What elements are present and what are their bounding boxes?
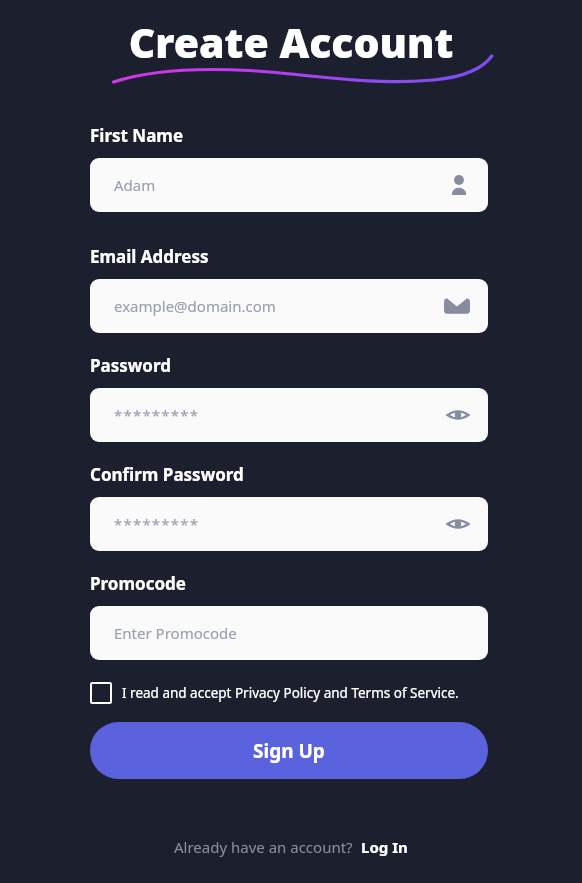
button[interactable]: Show password — [446, 403, 470, 427]
staticText: ********* — [114, 405, 200, 425]
staticText: I read and accept Privacy Policy and Ter… — [122, 684, 459, 702]
button[interactable]: Sign Up — [90, 722, 488, 779]
button[interactable]: Email address — [444, 293, 470, 319]
button[interactable]: Log In — [361, 837, 408, 857]
staticText: ********* — [114, 514, 200, 534]
staticText: Promocode — [90, 572, 186, 595]
staticText: Adam — [114, 175, 156, 195]
staticText: First Name — [90, 124, 184, 147]
staticText: Create Account — [0, 14, 582, 70]
staticText: Sign Up — [253, 738, 325, 764]
button[interactable]: First name — [448, 174, 470, 196]
button[interactable]: Enter Promocode — [90, 606, 488, 660]
staticText: Already have an account? — [174, 837, 353, 857]
staticText: example@domain.com — [114, 296, 276, 316]
staticText: Enter Promocode — [114, 623, 237, 643]
button[interactable]: ********* — [90, 497, 488, 551]
staticText: Log In — [361, 837, 408, 857]
button[interactable]: Adam — [90, 158, 488, 212]
button[interactable]: example@domain.com — [90, 279, 488, 333]
button[interactable]: I read and accept Privacy Policy and Ter… — [90, 682, 488, 704]
staticText: Confirm Password — [90, 463, 244, 486]
button[interactable]: Show confirm password — [446, 512, 470, 536]
staticText: Email Address — [90, 245, 209, 268]
staticText: Password — [90, 354, 171, 377]
button[interactable]: ********* — [90, 388, 488, 442]
